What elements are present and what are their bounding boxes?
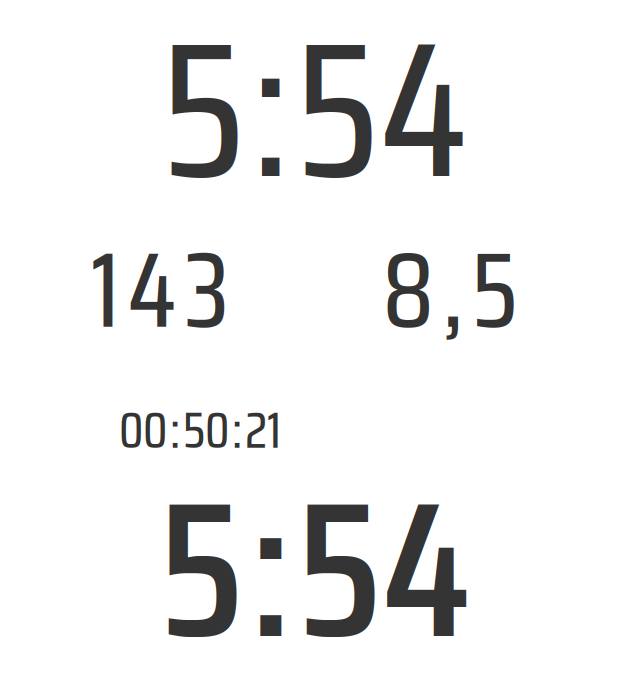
staticText: 4 — [127, 207, 176, 373]
staticText: : — [250, 420, 291, 696]
staticText: 1 — [90, 207, 119, 373]
staticText: 21 — [245, 390, 281, 470]
staticText: 3 — [184, 207, 229, 373]
staticText: 5 — [471, 207, 517, 373]
staticText: 5 — [161, 0, 245, 260]
staticText: 8 — [382, 207, 434, 373]
staticText: : — [232, 390, 242, 470]
staticText: 00 — [119, 390, 167, 470]
staticText: 54 — [297, 420, 471, 696]
staticText: 5 — [159, 420, 244, 696]
staticText: , — [442, 207, 463, 373]
staticText: : — [170, 390, 180, 470]
staticText: 50 — [183, 390, 229, 470]
staticText: : — [251, 0, 289, 260]
staticText: 54 — [295, 0, 468, 260]
